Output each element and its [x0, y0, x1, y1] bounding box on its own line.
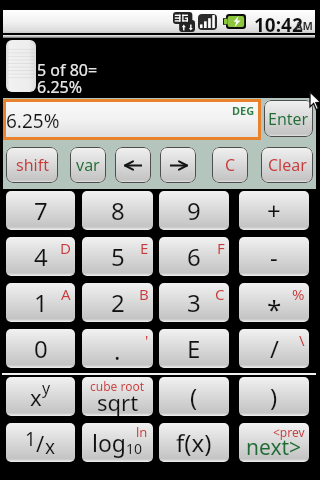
staticText: .: [114, 334, 121, 367]
button[interactable]: 2: [82, 283, 153, 322]
staticText: 9: [187, 194, 201, 227]
staticText: 5: [111, 240, 125, 273]
button[interactable]: /: [239, 329, 309, 368]
button[interactable]: 4: [6, 237, 75, 276]
staticText: log: [92, 427, 126, 458]
staticText: 3: [187, 286, 201, 319]
button[interactable]: shift: [6, 147, 58, 183]
staticText: cube root: [90, 378, 145, 394]
button[interactable]: Enter: [264, 100, 313, 137]
staticText: Enter: [268, 108, 309, 130]
button[interactable]: Right: [160, 147, 196, 183]
button[interactable]: +: [239, 191, 309, 230]
staticText: 4: [34, 240, 48, 273]
button[interactable]: C: [212, 147, 248, 183]
staticText: C: [225, 154, 236, 176]
button[interactable]: (: [159, 377, 229, 416]
staticText: A: [61, 284, 71, 304]
button[interactable]: 0: [6, 329, 75, 368]
button[interactable]: 9: [159, 191, 229, 230]
button[interactable]: -: [239, 237, 309, 276]
button[interactable]: 8: [82, 191, 153, 230]
staticText: next>: [246, 433, 302, 462]
staticText: C: [215, 284, 225, 304]
staticText: <prev: [273, 424, 305, 440]
button[interactable]: ): [239, 377, 309, 416]
button[interactable]: Clear: [261, 147, 313, 183]
staticText: 5 of 80=: [37, 59, 98, 81]
staticText: 1: [34, 286, 48, 319]
staticText: 6: [187, 240, 201, 273]
staticText: 7: [34, 194, 48, 227]
staticText: ): [270, 380, 278, 413]
staticText: DEG: [232, 103, 255, 118]
staticText: x: [30, 382, 42, 412]
staticText: +: [267, 194, 281, 227]
button[interactable]: 6: [159, 237, 229, 276]
button[interactable]: var: [70, 147, 106, 183]
button[interactable]: 5: [82, 237, 153, 276]
button[interactable]: sqrt: [82, 377, 153, 416]
staticText: 6.25%: [37, 76, 83, 98]
button[interactable]: *: [239, 283, 309, 322]
button[interactable]: 1: [6, 283, 75, 322]
staticText: F: [217, 238, 225, 258]
button[interactable]: f(x): [159, 423, 229, 462]
staticText: 10:42: [254, 12, 303, 35]
button[interactable]: 1: [6, 423, 75, 462]
staticText: 2: [111, 286, 125, 319]
staticText: B: [139, 284, 149, 304]
staticText: AM: [295, 18, 313, 33]
staticText: 0: [34, 332, 48, 365]
staticText: D: [60, 238, 71, 258]
button[interactable]: 3: [159, 283, 229, 322]
button[interactable]: x: [6, 377, 75, 416]
staticText: *: [267, 291, 282, 322]
staticText: \: [299, 330, 305, 350]
button[interactable]: 6.25%: [6, 102, 258, 137]
staticText: 10: [126, 439, 143, 458]
staticText: E: [140, 238, 149, 258]
staticText: Clear: [268, 154, 307, 176]
staticText: 6.25%: [6, 108, 60, 134]
staticText: var: [76, 154, 100, 176]
staticText: /: [270, 332, 279, 365]
staticText: y: [42, 377, 51, 399]
staticText: 1: [25, 426, 36, 452]
staticText: -: [270, 240, 278, 273]
button[interactable]: log: [82, 423, 153, 462]
button[interactable]: E: [159, 329, 229, 368]
staticText: f(x): [176, 426, 212, 459]
staticText: 8: [111, 194, 125, 227]
staticText: E: [187, 332, 201, 365]
staticText: ln: [136, 423, 148, 441]
staticText: sqrt: [97, 387, 139, 416]
staticText: x: [45, 434, 56, 460]
button[interactable]: next>: [239, 423, 309, 462]
staticText: shift: [16, 154, 49, 176]
button[interactable]: Left: [115, 147, 151, 183]
button[interactable]: .: [82, 329, 153, 368]
staticText: ': [145, 330, 149, 350]
staticText: %: [292, 284, 305, 304]
staticText: /: [36, 428, 45, 458]
staticText: (: [190, 380, 198, 413]
button[interactable]: 7: [6, 191, 75, 230]
